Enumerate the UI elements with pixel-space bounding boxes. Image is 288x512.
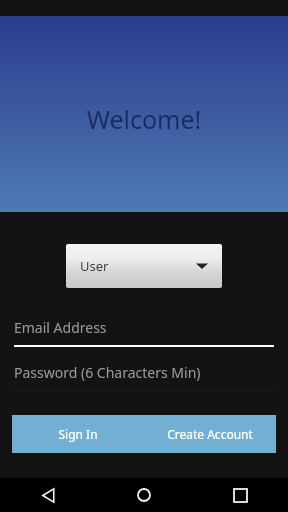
staticText: Sign In <box>58 426 98 442</box>
staticText: User <box>80 257 109 275</box>
button[interactable]: Back <box>0 478 96 512</box>
staticText: Welcome! <box>0 102 288 136</box>
staticText: Create Account <box>167 426 253 442</box>
button[interactable]: Email Address <box>14 318 274 347</box>
button[interactable]: Create Account <box>144 415 276 453</box>
staticText: Password (6 Characters Min) <box>14 363 274 382</box>
button[interactable]: User <box>66 244 222 288</box>
staticText: Email Address <box>14 318 274 337</box>
button[interactable]: Home <box>96 478 192 512</box>
button[interactable]: Password (6 Characters Min) <box>14 363 274 391</box>
button[interactable]: Sign In <box>12 415 144 453</box>
button[interactable]: Recent apps <box>192 478 288 512</box>
